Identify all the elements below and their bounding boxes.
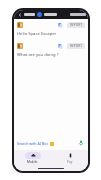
- staticText: Mobile: [27, 160, 38, 164]
- staticText: REPORT: [70, 44, 83, 48]
- button[interactable]: Copy: [57, 22, 63, 28]
- button[interactable]: Assistant avatar: [17, 43, 23, 49]
- button[interactable]: REPORT: [67, 43, 85, 49]
- button[interactable]: REPORT: [67, 22, 85, 28]
- staticText: Search with AI Bot: [17, 141, 48, 146]
- button[interactable]: Search with AI Bot: [17, 141, 54, 146]
- staticText: REPORT: [70, 23, 83, 27]
- staticText: Hello Space Escaper: [17, 31, 57, 37]
- button[interactable]: Assistant avatar: [17, 22, 23, 28]
- button[interactable]: Copy: [57, 43, 63, 49]
- staticText: What are you doing ?: [17, 52, 59, 58]
- button[interactable]: Mobile: [14, 150, 51, 166]
- staticText: Pay: [67, 160, 73, 164]
- button[interactable]: Back: [16, 11, 23, 18]
- button[interactable]: [24, 12, 70, 17]
- button[interactable]: Voice search: [77, 139, 85, 147]
- button[interactable]: Pay: [51, 150, 88, 166]
